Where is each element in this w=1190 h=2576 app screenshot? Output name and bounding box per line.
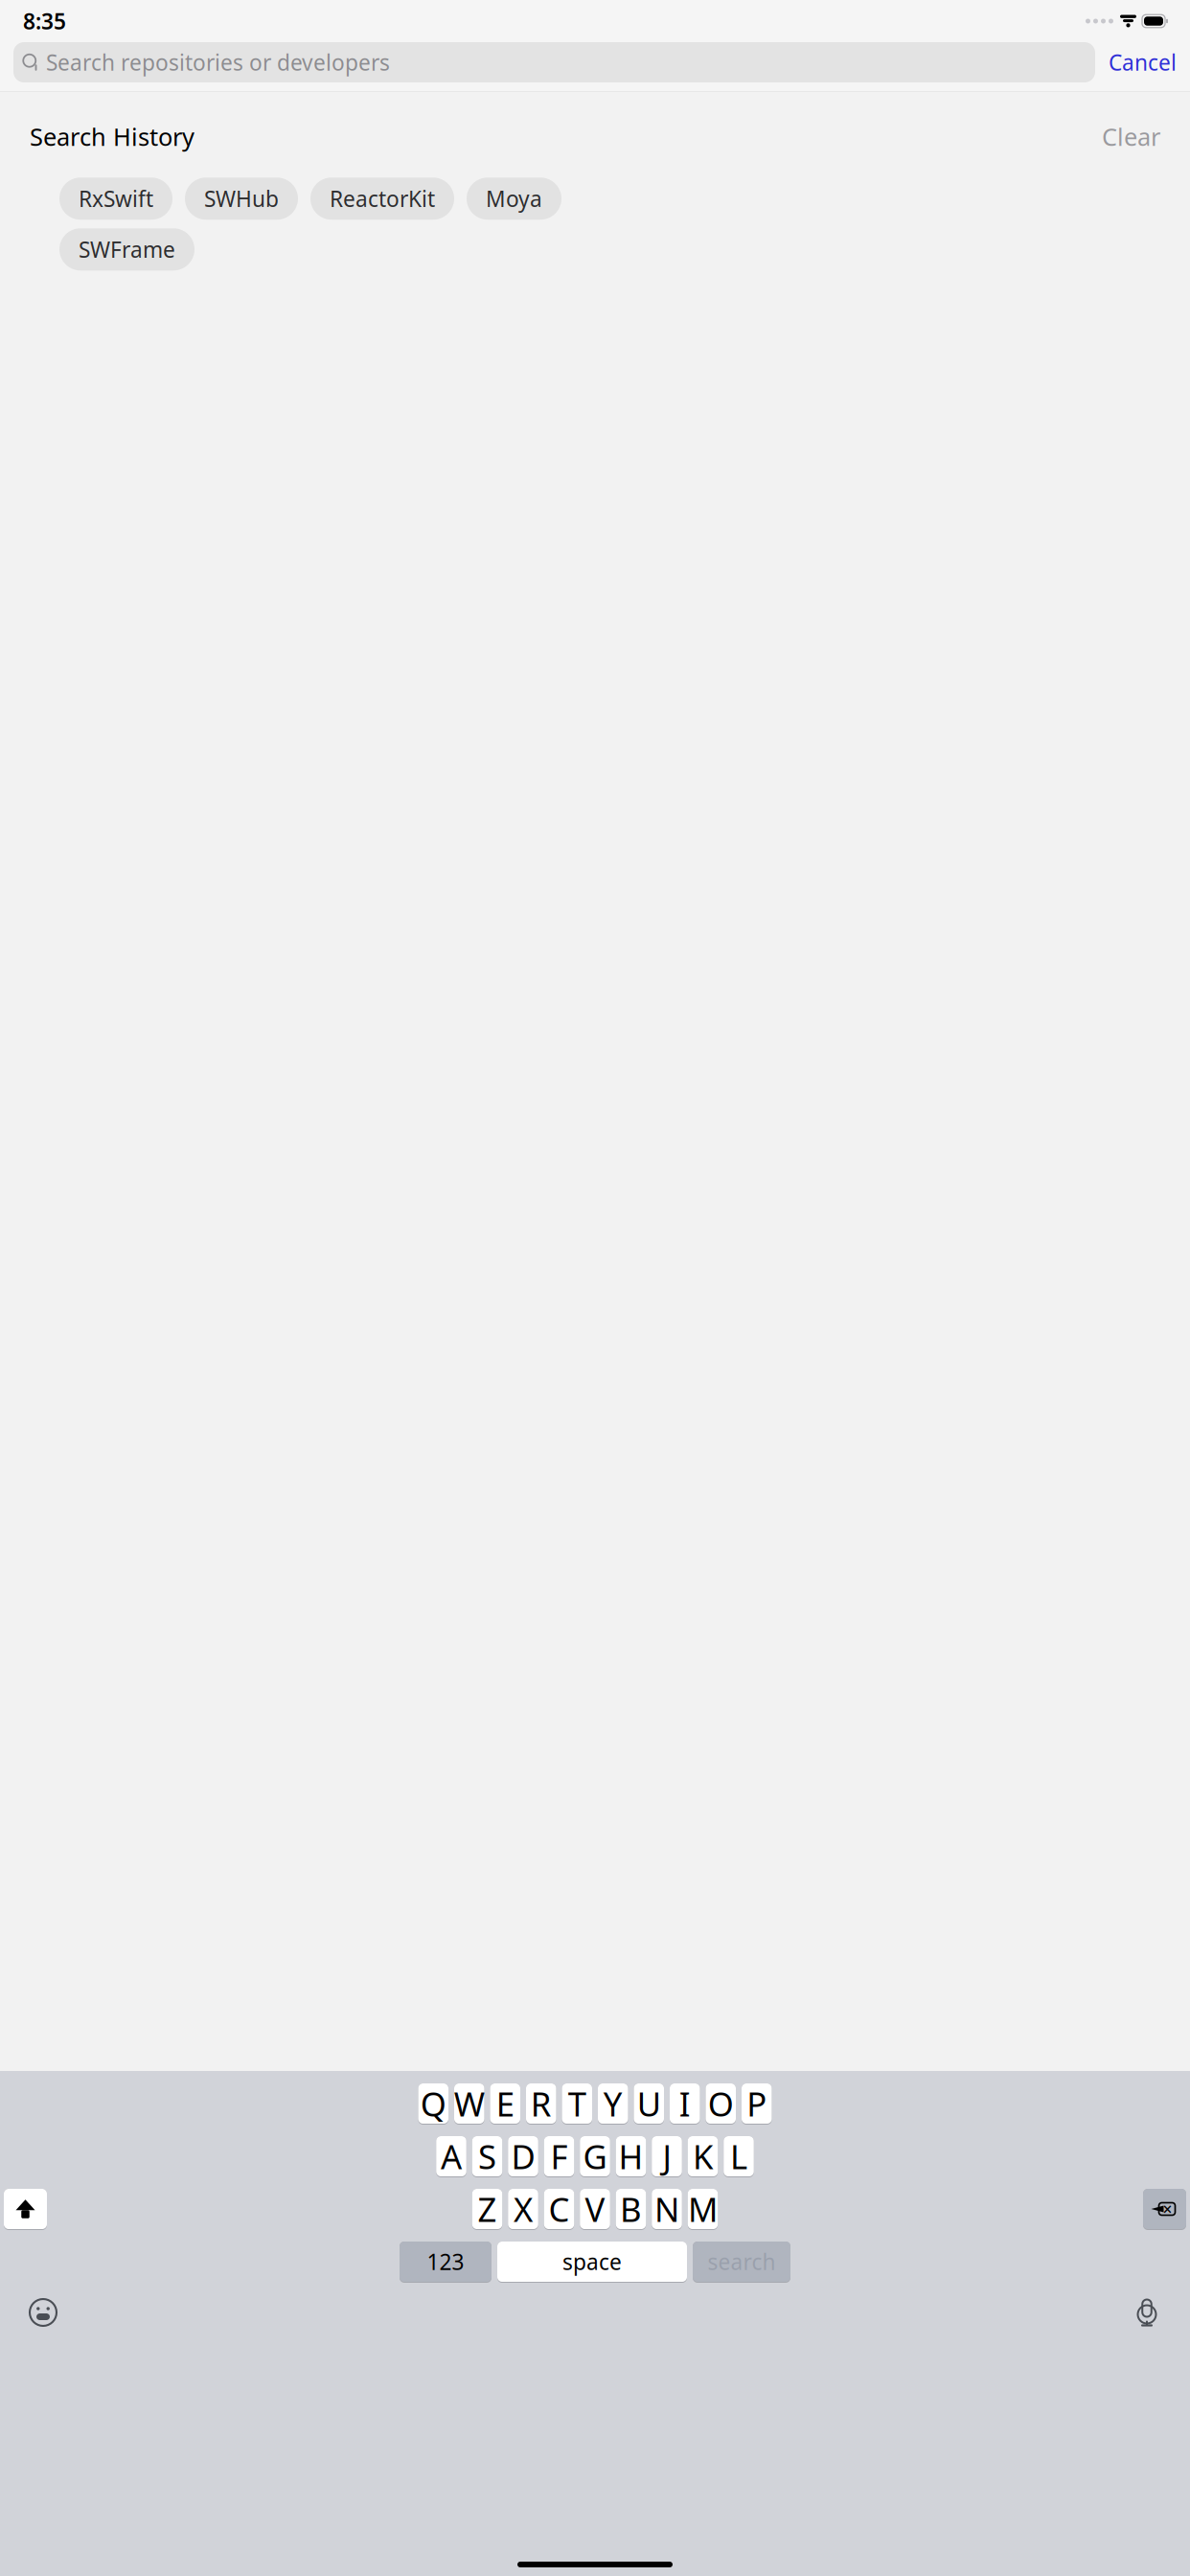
staticText: M: [688, 2187, 718, 2231]
staticText: Z: [478, 2187, 497, 2231]
button[interactable]: B: [616, 2189, 646, 2230]
staticText: S: [478, 2134, 496, 2178]
staticText: K: [693, 2135, 713, 2179]
staticText: C: [549, 2187, 570, 2231]
staticText: H: [618, 2134, 643, 2178]
button[interactable]: Q: [418, 2083, 448, 2125]
staticText: space: [562, 2247, 622, 2276]
button[interactable]: K: [688, 2136, 718, 2177]
staticText: J: [663, 2134, 671, 2178]
button[interactable]: D: [508, 2136, 538, 2177]
button[interactable]: X: [508, 2189, 538, 2230]
staticText: W: [454, 2082, 485, 2126]
button[interactable]: Emoji: [21, 2290, 65, 2334]
staticText: T: [568, 2082, 586, 2126]
staticText: Q: [420, 2081, 446, 2126]
staticText: Moya: [486, 184, 542, 213]
staticText: RxSwift: [79, 184, 153, 213]
button[interactable]: N: [652, 2189, 682, 2230]
button[interactable]: 123: [400, 2242, 492, 2283]
button[interactable]: Search repositories or developers: [13, 42, 1095, 82]
staticText: search: [708, 2248, 776, 2277]
button[interactable]: I: [670, 2083, 700, 2125]
button[interactable]: Moya: [467, 177, 561, 220]
button[interactable]: L: [724, 2136, 754, 2177]
button[interactable]: S: [472, 2136, 502, 2177]
button[interactable]: search: [693, 2242, 790, 2283]
button[interactable]: ReactorKit: [310, 177, 454, 220]
button[interactable]: G: [580, 2136, 610, 2177]
button[interactable]: SWHub: [185, 177, 298, 220]
staticText: Cancel: [1109, 48, 1177, 77]
button[interactable]: A: [436, 2136, 466, 2177]
staticText: F: [550, 2134, 568, 2178]
staticText: V: [585, 2187, 605, 2231]
staticText: I: [679, 2081, 691, 2126]
staticText: Search History: [30, 120, 195, 153]
button[interactable]: T: [562, 2083, 592, 2125]
staticText: 8:35: [23, 7, 66, 35]
staticText: T: [568, 2081, 586, 2126]
button[interactable]: Shift: [4, 2189, 47, 2230]
button[interactable]: Clear: [1102, 120, 1160, 153]
button[interactable]: O: [706, 2083, 736, 2125]
button[interactable]: W: [454, 2083, 484, 2125]
staticText: A: [441, 2134, 462, 2178]
staticText: S: [478, 2135, 496, 2179]
staticText: X: [514, 2187, 533, 2231]
staticText: K: [693, 2134, 713, 2178]
staticText: Y: [603, 2081, 623, 2126]
staticText: P: [747, 2082, 767, 2126]
button[interactable]: U: [634, 2083, 664, 2125]
button[interactable]: P: [742, 2083, 772, 2125]
staticText: U: [637, 2081, 661, 2126]
staticText: R: [531, 2081, 552, 2126]
staticText: Q: [420, 2082, 446, 2126]
staticText: D: [511, 2135, 535, 2179]
button[interactable]: space: [497, 2242, 687, 2283]
staticText: N: [654, 2187, 679, 2231]
staticText: G: [583, 2134, 607, 2178]
staticText: D: [511, 2134, 535, 2178]
staticText: Y: [603, 2082, 623, 2126]
staticText: 123: [427, 2248, 464, 2277]
button[interactable]: E: [490, 2083, 520, 2125]
button[interactable]: Y: [598, 2083, 628, 2125]
staticText: E: [496, 2081, 514, 2126]
staticText: N: [654, 2187, 679, 2231]
staticText: Z: [478, 2187, 497, 2231]
button[interactable]: H: [616, 2136, 646, 2177]
staticText: G: [583, 2135, 607, 2179]
staticText: V: [585, 2187, 605, 2231]
staticText: O: [708, 2082, 734, 2126]
staticText: ReactorKit: [330, 184, 435, 213]
staticText: I: [679, 2082, 691, 2126]
staticText: space: [562, 2248, 622, 2277]
staticText: Search repositories or developers: [46, 48, 390, 77]
staticText: L: [730, 2134, 747, 2178]
staticText: C: [549, 2187, 570, 2231]
button[interactable]: Z: [472, 2189, 502, 2230]
button[interactable]: SWFrame: [59, 228, 195, 270]
staticText: F: [550, 2135, 568, 2179]
staticText: R: [531, 2082, 552, 2126]
button[interactable]: Delete: [1143, 2189, 1186, 2230]
staticText: A: [441, 2135, 462, 2179]
staticText: search: [708, 2247, 776, 2276]
button[interactable]: V: [580, 2189, 610, 2230]
button[interactable]: Dictate: [1125, 2290, 1169, 2334]
staticText: SWFrame: [79, 235, 175, 264]
button[interactable]: RxSwift: [59, 177, 172, 220]
button[interactable]: M: [688, 2189, 718, 2230]
button[interactable]: Cancel: [1095, 42, 1179, 82]
staticText: M: [688, 2187, 718, 2231]
button[interactable]: F: [544, 2136, 574, 2177]
staticText: H: [618, 2135, 643, 2179]
staticText: L: [730, 2135, 747, 2179]
staticText: J: [663, 2135, 671, 2179]
button[interactable]: C: [544, 2189, 574, 2230]
button[interactable]: J: [652, 2136, 682, 2177]
button[interactable]: R: [526, 2083, 556, 2125]
staticText: E: [496, 2082, 514, 2126]
staticText: B: [620, 2187, 642, 2231]
